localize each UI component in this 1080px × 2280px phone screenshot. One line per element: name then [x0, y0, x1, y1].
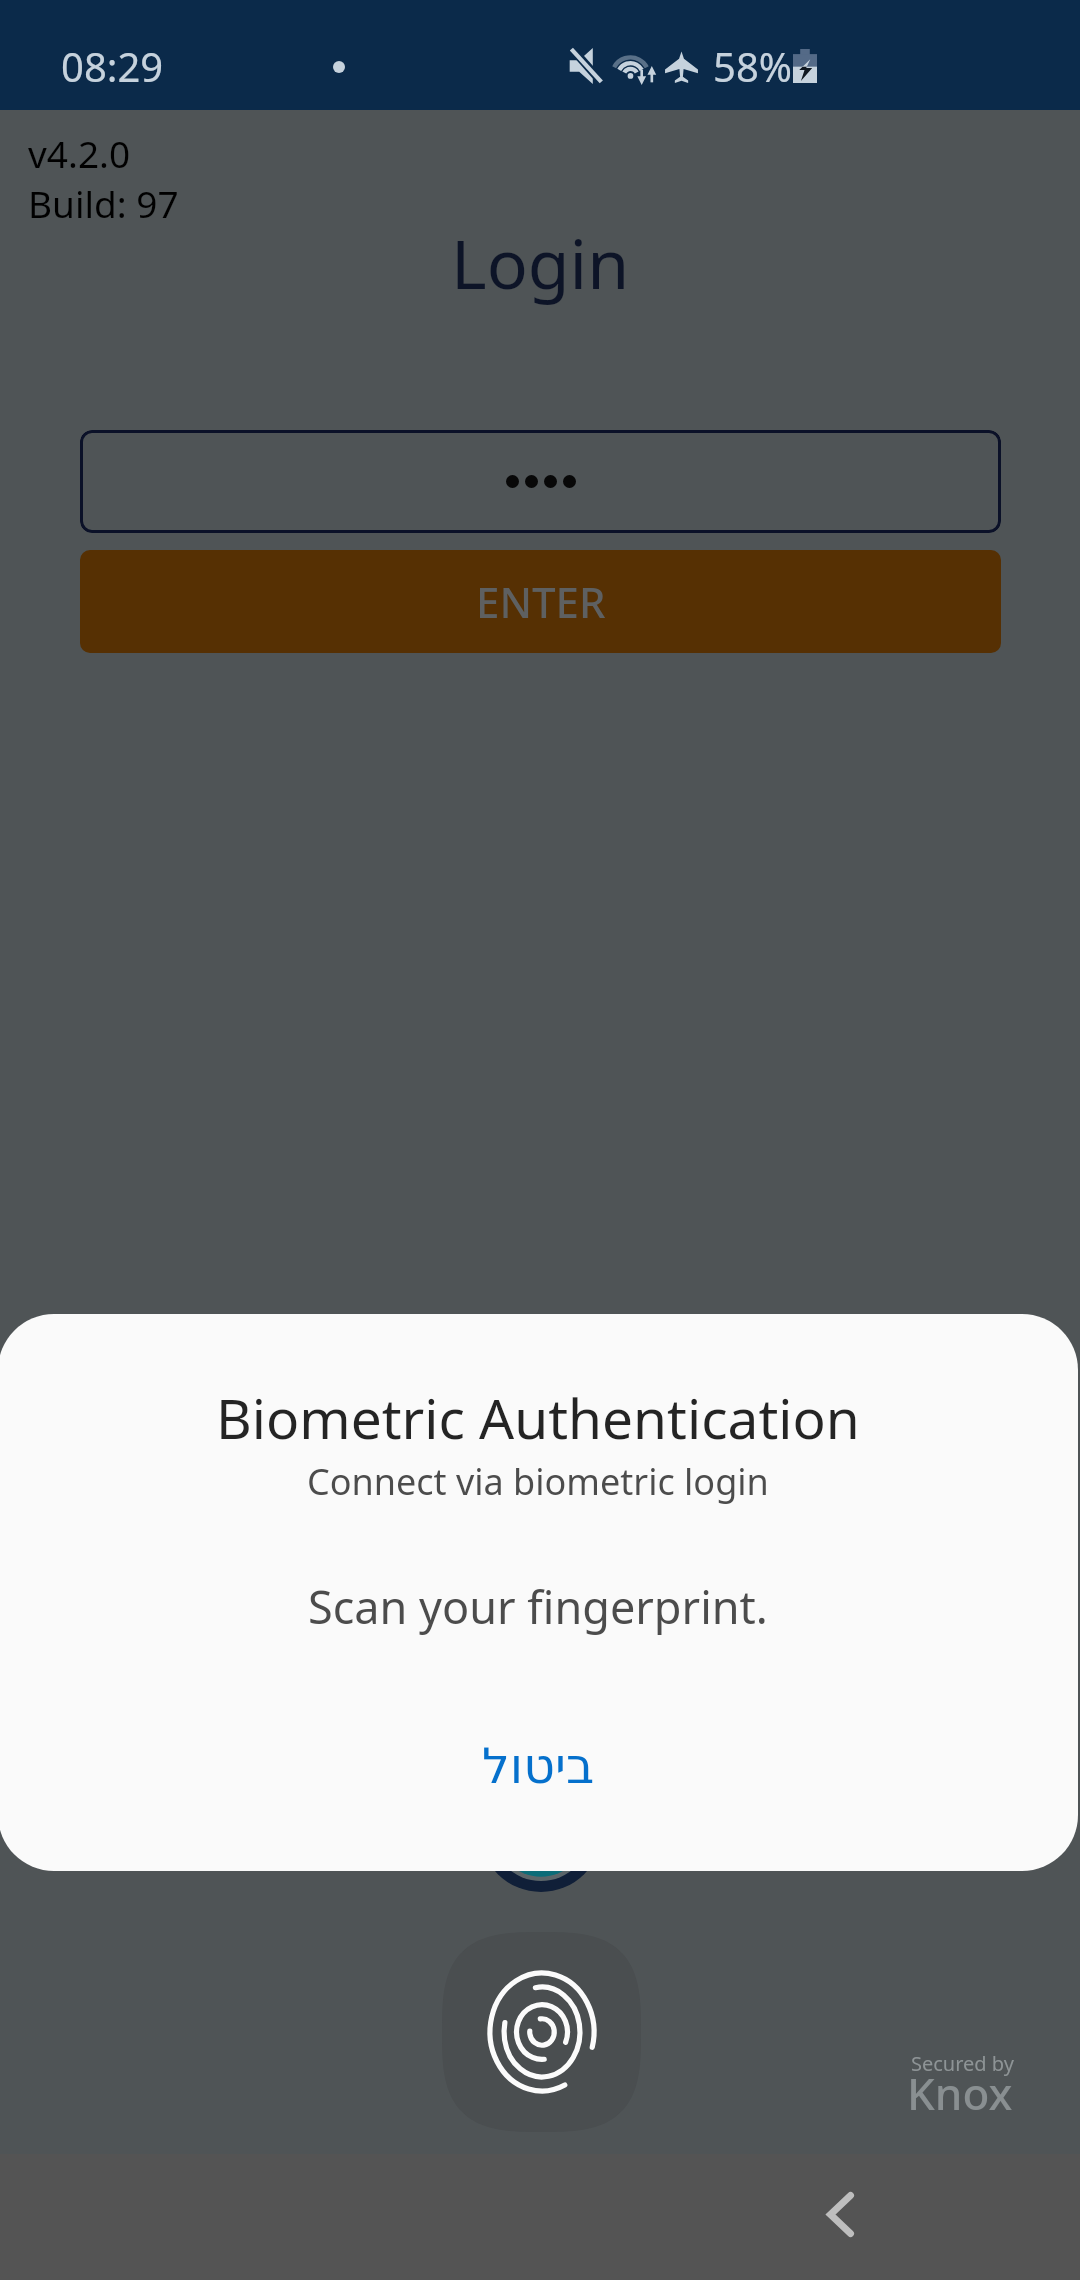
button[interactable]: Fingerprint — [442, 1932, 641, 2132]
staticText: v4.2.0 — [28, 128, 131, 178]
staticText: Login — [451, 216, 630, 309]
button[interactable]: ביטול — [378, 1719, 698, 1814]
staticText: 08:29 — [61, 39, 164, 93]
staticText: 58% — [713, 39, 792, 93]
staticText: Knox — [907, 2063, 1013, 2123]
staticText: Secured by — [911, 2050, 1014, 2077]
staticText: Build: 97 — [28, 178, 179, 228]
staticText: ביטול — [482, 1738, 595, 1795]
button[interactable]: Back — [780, 2154, 900, 2274]
button[interactable]: ENTER — [80, 550, 1001, 653]
staticText: Biometric Authentication — [216, 1380, 860, 1455]
staticText: ENTER — [476, 573, 606, 630]
button[interactable] — [80, 430, 1001, 533]
staticText: Scan your fingerprint. — [308, 1576, 768, 1637]
staticText: Connect via biometric login — [307, 1457, 769, 1506]
